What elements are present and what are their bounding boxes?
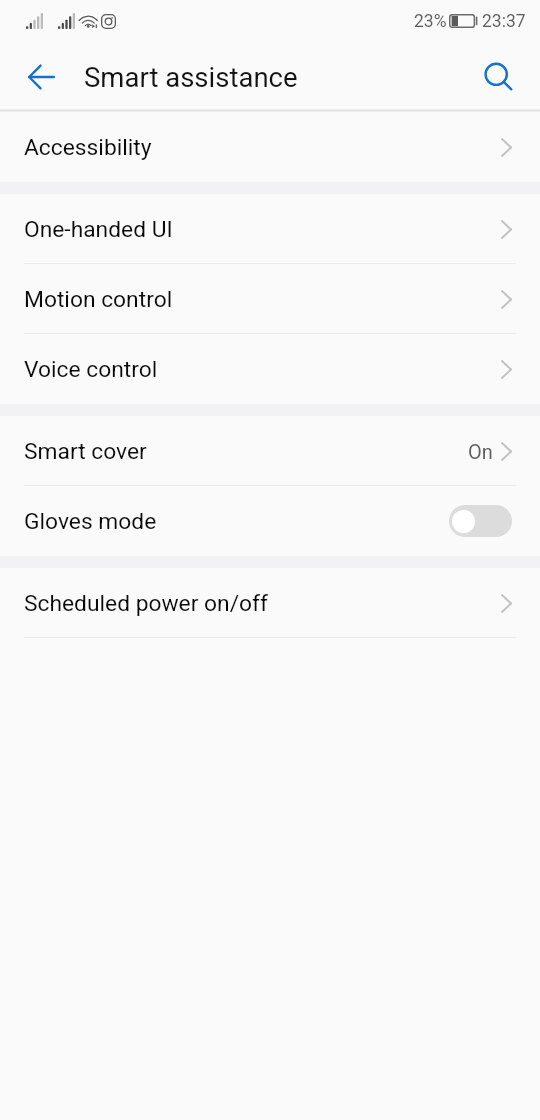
button[interactable]: Voice control [0,334,540,404]
staticText: Scheduled power on/off [24,590,268,617]
staticText: Motion control [24,286,173,313]
staticText: Gloves mode [24,508,157,535]
staticText: Voice control [24,356,158,383]
staticText: 23:37 [482,11,526,32]
staticText: One-handed UI [24,216,173,243]
button[interactable]: Gloves mode [0,486,540,556]
staticText: Smart assistance [84,61,298,93]
button[interactable]: Accessibility [0,112,540,182]
button[interactable]: One-handed UI [0,194,540,264]
button[interactable]: Scheduled power on/off [0,568,540,638]
button[interactable]: Smart cover [0,416,540,486]
button[interactable]: Motion control [0,264,540,334]
staticText: Smart cover [24,438,147,465]
staticText: Accessibility [24,134,152,161]
staticText: On [468,440,493,463]
staticText: 23% [414,11,447,32]
button[interactable]: Gloves mode toggle [449,505,512,537]
button[interactable]: Search [471,49,527,105]
button[interactable]: Back [13,49,69,105]
